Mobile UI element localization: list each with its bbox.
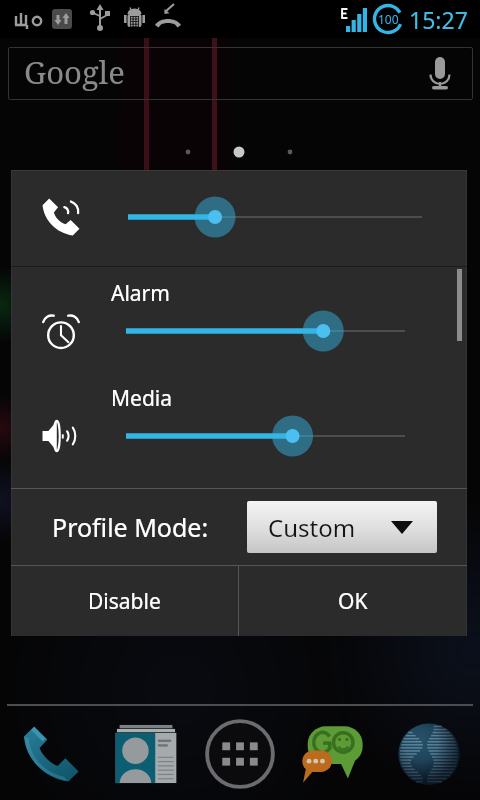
- button[interactable]: People: [103, 708, 189, 800]
- button[interactable]: Google Search: [8, 47, 473, 100]
- button[interactable]: Disable: [11, 566, 238, 636]
- button[interactable]: [11, 170, 467, 266]
- button[interactable]: Messaging: [291, 708, 377, 800]
- staticText: OK: [338, 587, 368, 616]
- button[interactable]: Browser: [386, 708, 472, 800]
- button[interactable]: OK: [239, 566, 467, 636]
- staticText: Profile Mode:: [52, 510, 209, 544]
- staticText: 100: [378, 11, 399, 27]
- staticText: 15:27: [409, 4, 468, 35]
- staticText: Custom: [268, 511, 356, 544]
- staticText: Alarm: [111, 279, 170, 308]
- button[interactable]: Phone: [8, 708, 94, 800]
- staticText: Google: [24, 51, 125, 93]
- button[interactable]: Custom: [247, 501, 437, 553]
- button[interactable]: Media: [11, 384, 467, 486]
- button[interactable]: Alarm: [11, 267, 467, 384]
- button[interactable]: All apps: [197, 708, 283, 800]
- staticText: Disable: [88, 587, 161, 616]
- staticText: Media: [111, 384, 173, 413]
